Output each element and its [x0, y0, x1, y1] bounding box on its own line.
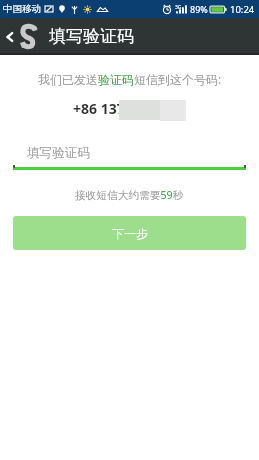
staticText: 填写验证码: [27, 145, 90, 161]
staticText: 接收短信大约需要59秒: [75, 188, 184, 203]
staticText: 我们已发送验证码短信到这个号码:: [38, 71, 222, 87]
button[interactable]: 填写验证码: [13, 140, 246, 170]
button[interactable]: Back: [0, 18, 20, 55]
staticText: +86 137: [73, 99, 125, 118]
staticText: 中国移动: [3, 3, 41, 15]
staticText: 3G: [175, 4, 182, 11]
button[interactable]: 下一步: [13, 216, 246, 250]
staticText: 填写验证码: [49, 26, 134, 47]
staticText: 89%: [190, 3, 208, 15]
staticText: 下一步: [112, 226, 148, 241]
staticText: 10:24: [230, 3, 255, 16]
